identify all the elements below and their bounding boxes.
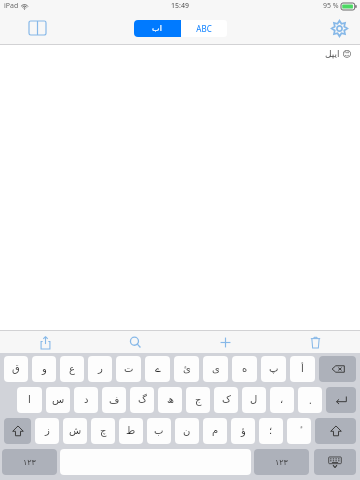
staticText: ج [195, 394, 202, 406]
staticText: ا [28, 394, 31, 406]
button[interactable]: چ [91, 418, 115, 444]
staticText: ١٢٣ [275, 458, 288, 467]
staticText: 95 % [323, 1, 339, 11]
staticText: اب [152, 24, 162, 33]
button[interactable]: ک [214, 387, 238, 413]
staticText: ز [45, 425, 50, 437]
staticText: ت [124, 363, 134, 375]
staticText: 15:49 [171, 1, 189, 11]
button[interactable]: ط [119, 418, 143, 444]
button[interactable]: Settings [326, 15, 352, 41]
button[interactable]: ج [186, 387, 210, 413]
staticText: گ [138, 394, 147, 406]
button[interactable]: ا [17, 387, 42, 413]
button[interactable]: ٔ [287, 418, 311, 444]
staticText: iPad [4, 1, 19, 11]
button[interactable]: م [203, 418, 227, 444]
staticText: پ [269, 363, 279, 375]
staticText: د [84, 394, 89, 406]
button[interactable]: ش [63, 418, 87, 444]
button[interactable]: ، [270, 387, 294, 413]
button[interactable]: Sidebar [24, 15, 50, 41]
button[interactable]: ب [147, 418, 171, 444]
staticText: ل [250, 394, 258, 406]
staticText: ی [212, 363, 220, 375]
staticText: ؛ [269, 425, 273, 437]
button[interactable]: ١٢٣ [2, 449, 57, 475]
button[interactable]: Share [0, 331, 90, 353]
staticText: ب [154, 425, 164, 437]
button[interactable]: ن [175, 418, 199, 444]
button[interactable]: و [32, 356, 56, 382]
button[interactable]: س [46, 387, 70, 413]
button[interactable]: Add [180, 331, 270, 353]
button[interactable]: ر [88, 356, 112, 382]
staticText: چ [100, 425, 107, 437]
staticText: أ [301, 363, 304, 375]
staticText: ن [183, 425, 191, 437]
button[interactable]: ABC [181, 20, 227, 37]
staticText: ایپل 😊 [325, 47, 352, 59]
button[interactable]: ے [145, 356, 170, 382]
button[interactable]: ت [116, 356, 141, 382]
staticText: ش [69, 425, 82, 437]
staticText: س [52, 394, 65, 406]
button[interactable]: ١٢٣ [254, 449, 309, 475]
staticText: ے [155, 363, 161, 375]
button[interactable]: گ [130, 387, 154, 413]
button[interactable]: ئ [174, 356, 199, 382]
button[interactable]: Shift [4, 418, 31, 444]
button[interactable]: Search [90, 331, 180, 353]
staticText: و [42, 363, 47, 375]
button[interactable]: ع [60, 356, 84, 382]
staticText: ف [109, 394, 120, 406]
button[interactable]: ؤ [231, 418, 255, 444]
staticText: ه [242, 363, 248, 375]
staticText: ر [98, 363, 103, 375]
button[interactable]: Delete [270, 331, 360, 353]
button[interactable]: ی [203, 356, 228, 382]
button[interactable]: ف [102, 387, 126, 413]
button[interactable]: Backspace [319, 356, 356, 382]
staticText: . [309, 393, 312, 407]
staticText: ط [126, 425, 136, 437]
staticText: ق [12, 363, 20, 375]
button[interactable]: . [298, 387, 322, 413]
staticText: ؤ [241, 425, 246, 437]
staticText: ھ [167, 394, 174, 406]
staticText: ک [222, 394, 231, 406]
button[interactable]: ھ [158, 387, 182, 413]
staticText: ، [280, 394, 284, 406]
button[interactable]: ق [4, 356, 28, 382]
staticText: ١٢٣ [23, 458, 36, 467]
button[interactable]: أ [290, 356, 315, 382]
staticText: ع [69, 363, 75, 375]
staticText: ABC [196, 23, 212, 34]
button[interactable]: Shift [315, 418, 356, 444]
button[interactable]: ز [35, 418, 59, 444]
button[interactable]: ه [232, 356, 257, 382]
button[interactable]: Return [326, 387, 356, 413]
button[interactable]: پ [261, 356, 286, 382]
staticText: ئ [183, 363, 191, 375]
button[interactable]: Hide keyboard [314, 449, 356, 475]
button[interactable]: ؛ [259, 418, 283, 444]
button[interactable]: اب [134, 20, 180, 37]
button[interactable]: ل [242, 387, 266, 413]
staticText: م [212, 425, 219, 437]
button[interactable]: د [74, 387, 98, 413]
